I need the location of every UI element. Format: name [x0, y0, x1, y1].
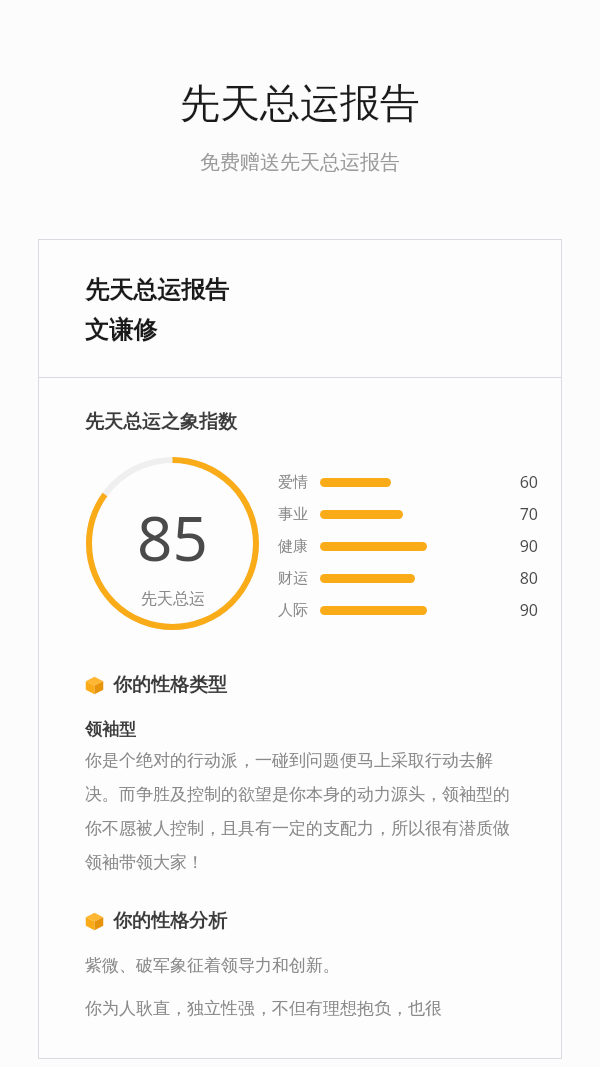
staticText: 事业: [278, 505, 320, 524]
staticText: 先天总运报告: [85, 275, 229, 305]
button[interactable]: 健康: [278, 530, 538, 562]
button[interactable]: 你的性格分析: [85, 909, 538, 933]
other: 你的性格分析: [85, 912, 104, 931]
staticText: 人际: [278, 601, 320, 620]
staticText: 你的性格类型: [113, 673, 227, 697]
staticText: 你是个绝对的行动派，一碰到问题便马上采取行动去解决。而争胜及控制的欲望是你本身的…: [85, 750, 518, 873]
button[interactable]: 爱情: [278, 466, 538, 498]
staticText: 60: [510, 471, 538, 493]
staticText: 先天总运: [141, 589, 205, 609]
staticText: 紫微、破军象征着领导力和创新。: [85, 955, 340, 976]
staticText: 领袖型: [85, 719, 136, 740]
staticText: 文谦修: [85, 315, 157, 345]
staticText: 免费赠送先天总运报告: [0, 150, 600, 175]
staticText: 财运: [278, 569, 320, 588]
staticText: 先天总运报告: [0, 78, 600, 128]
staticText: 90: [510, 535, 538, 557]
button[interactable]: 85: [85, 456, 260, 631]
staticText: 70: [510, 503, 538, 525]
staticText: 你为人耿直，独立性强，不但有理想抱负，也很: [85, 998, 518, 1019]
staticText: 你的性格分析: [113, 909, 227, 933]
button[interactable]: 你的性格类型: [85, 673, 538, 697]
staticText: 健康: [278, 537, 320, 556]
button[interactable]: 财运: [278, 562, 538, 594]
staticText: 85: [137, 495, 208, 579]
staticText: 先天总运之象指数: [85, 410, 237, 434]
staticText: 80: [510, 567, 538, 589]
staticText: 90: [510, 599, 538, 621]
other: 你的性格类型: [85, 676, 104, 695]
button[interactable]: 事业: [278, 498, 538, 530]
staticText: 爱情: [278, 473, 320, 492]
button[interactable]: 人际: [278, 594, 538, 626]
